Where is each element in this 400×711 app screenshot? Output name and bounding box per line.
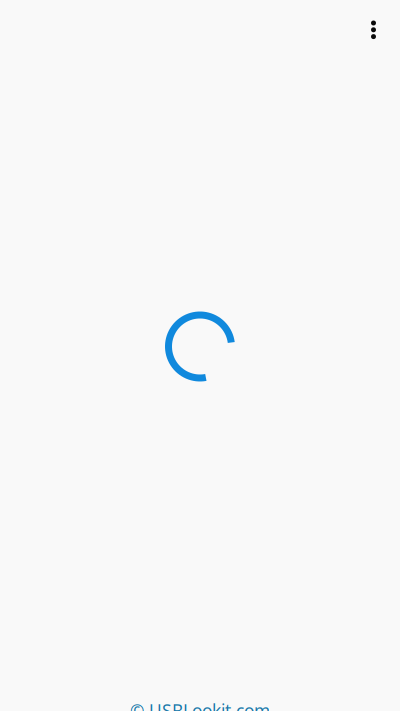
button[interactable]: © USBLookit.com [120, 695, 280, 711]
staticText: © USBLookit.com [130, 699, 270, 711]
button[interactable]: More options [356, 10, 390, 50]
